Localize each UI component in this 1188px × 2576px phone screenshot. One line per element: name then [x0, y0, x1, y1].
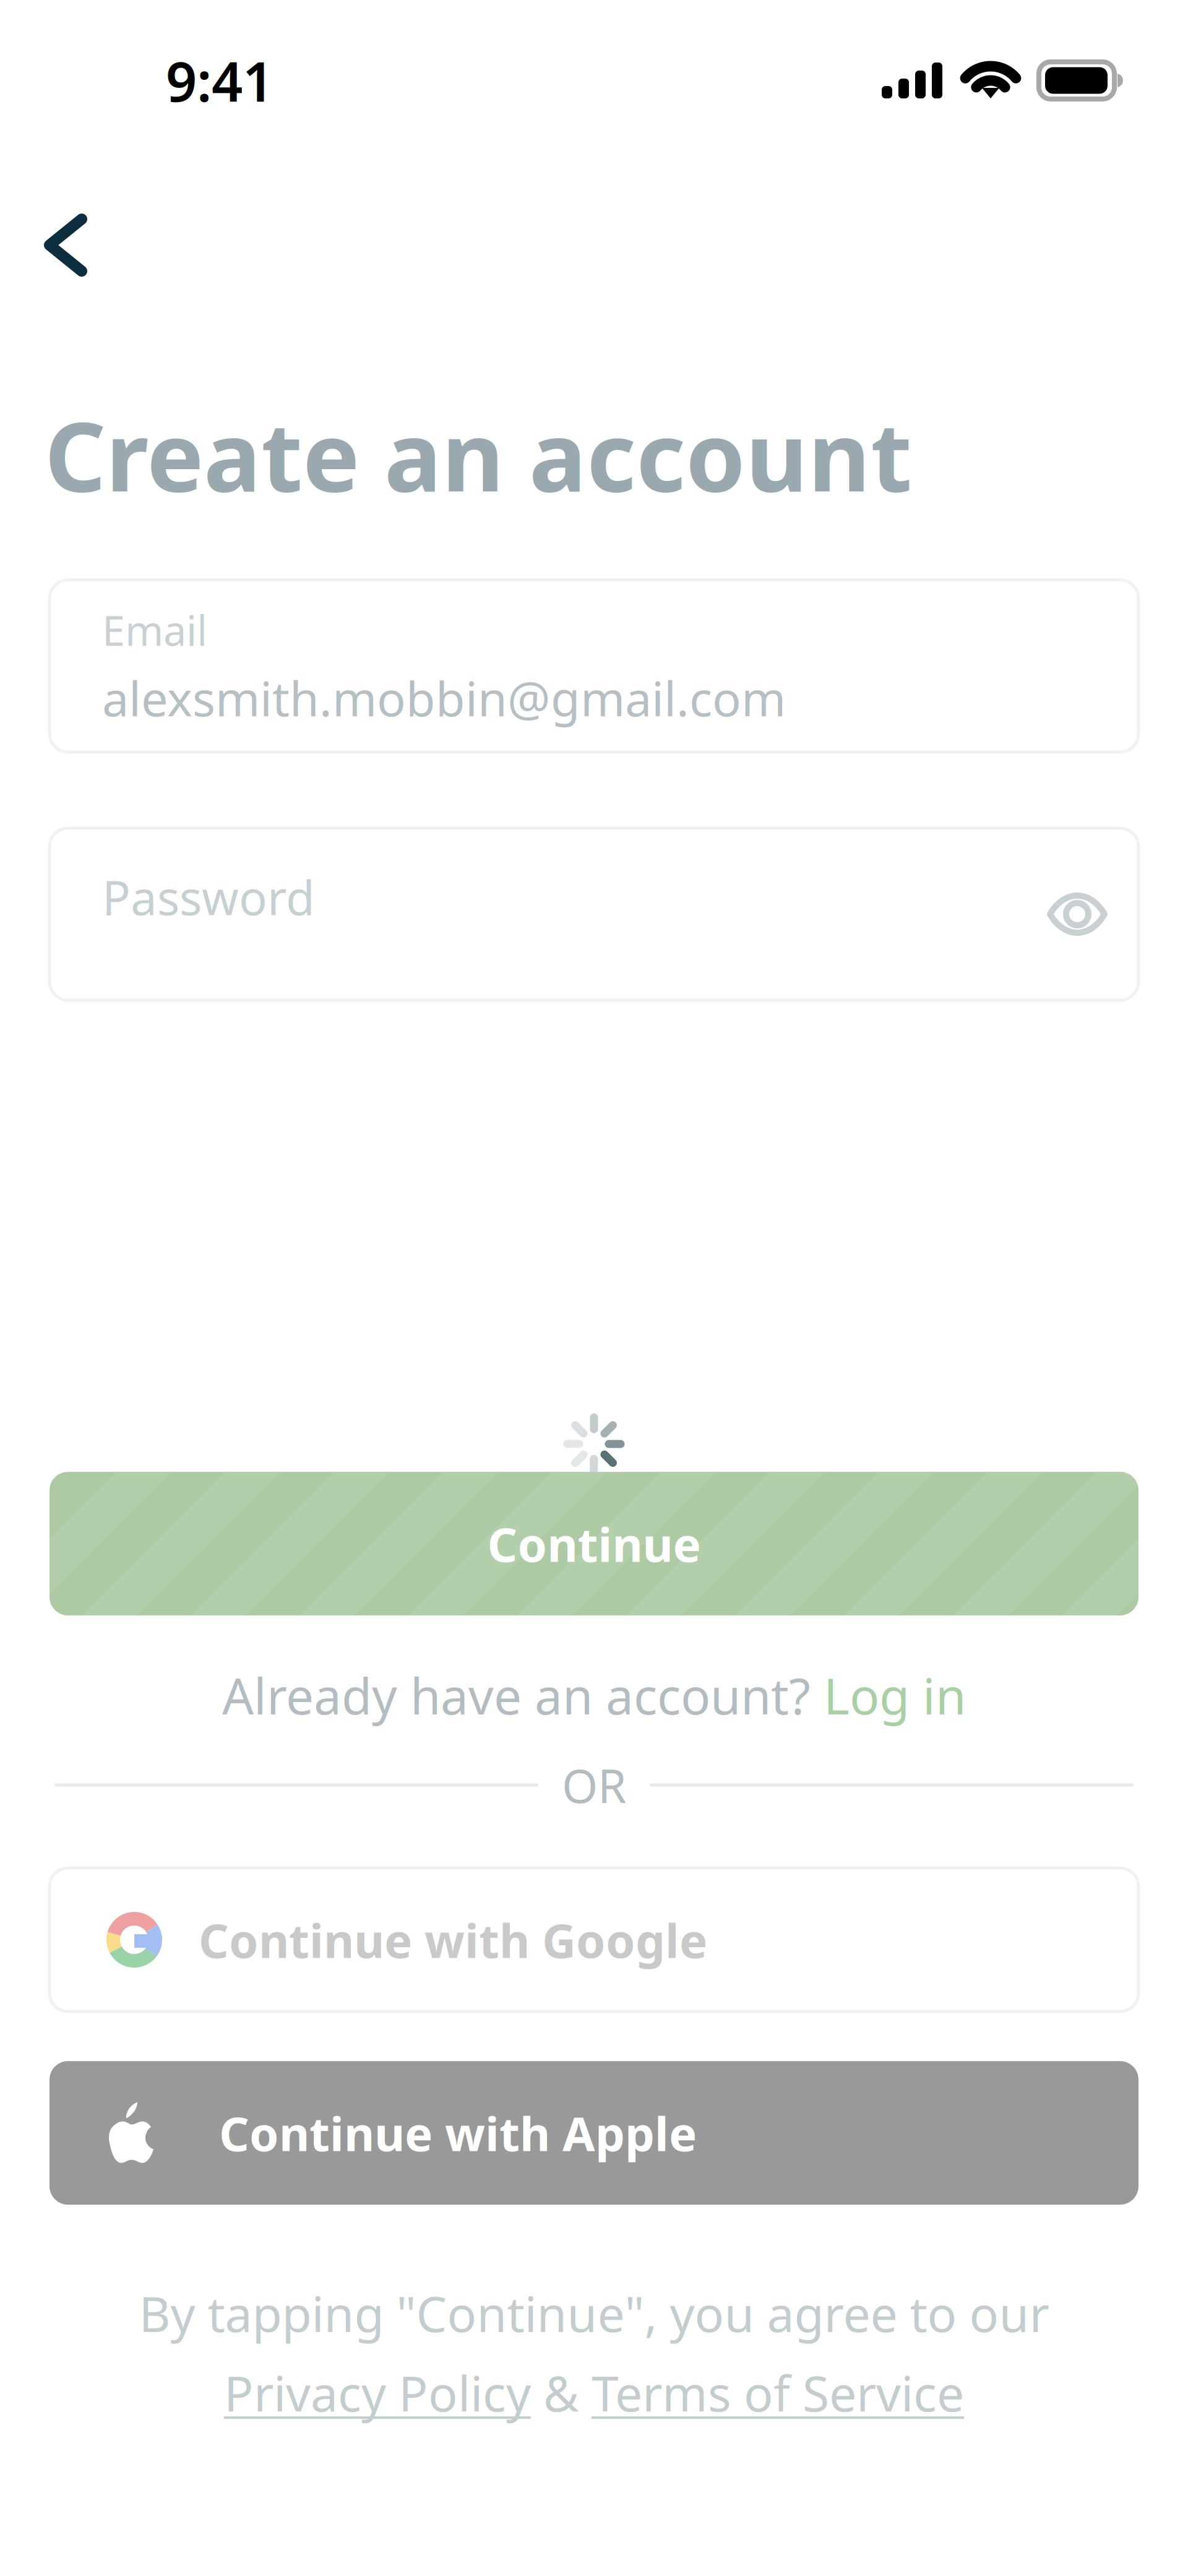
staticText: Terms of Service [592, 2360, 964, 2425]
staticText: Already have an account? [222, 1662, 824, 1728]
staticText: Create an account [45, 391, 912, 518]
button[interactable]: Back [0, 161, 118, 306]
staticText: Email [102, 602, 207, 657]
staticText: Privacy Policy [224, 2360, 531, 2425]
button[interactable]: Continue [49, 1472, 1138, 1615]
staticText: Continue with Google [199, 1909, 707, 1971]
button[interactable]: Privacy Policy [224, 2360, 531, 2425]
staticText: & [531, 2360, 592, 2425]
button[interactable]: Continue with Google [49, 1868, 1138, 2012]
staticText: OR [562, 1754, 626, 1816]
staticText: By tapping "Continue", you agree to our [139, 2281, 1049, 2346]
staticText: Log in [824, 1662, 966, 1728]
button[interactable]: Already have an account? [0, 1666, 1188, 1725]
staticText: Continue with Apple [219, 2102, 697, 2164]
button[interactable]: Terms of Service [592, 2360, 964, 2425]
staticText: alexsmith.mobbin@gmail.com [102, 666, 786, 729]
staticText: Continue [487, 1512, 701, 1575]
button[interactable]: Continue with Apple [49, 2061, 1138, 2205]
staticText: 9:41 [166, 44, 273, 117]
staticText: Password [102, 866, 315, 928]
button[interactable]: Show password [1047, 892, 1108, 936]
